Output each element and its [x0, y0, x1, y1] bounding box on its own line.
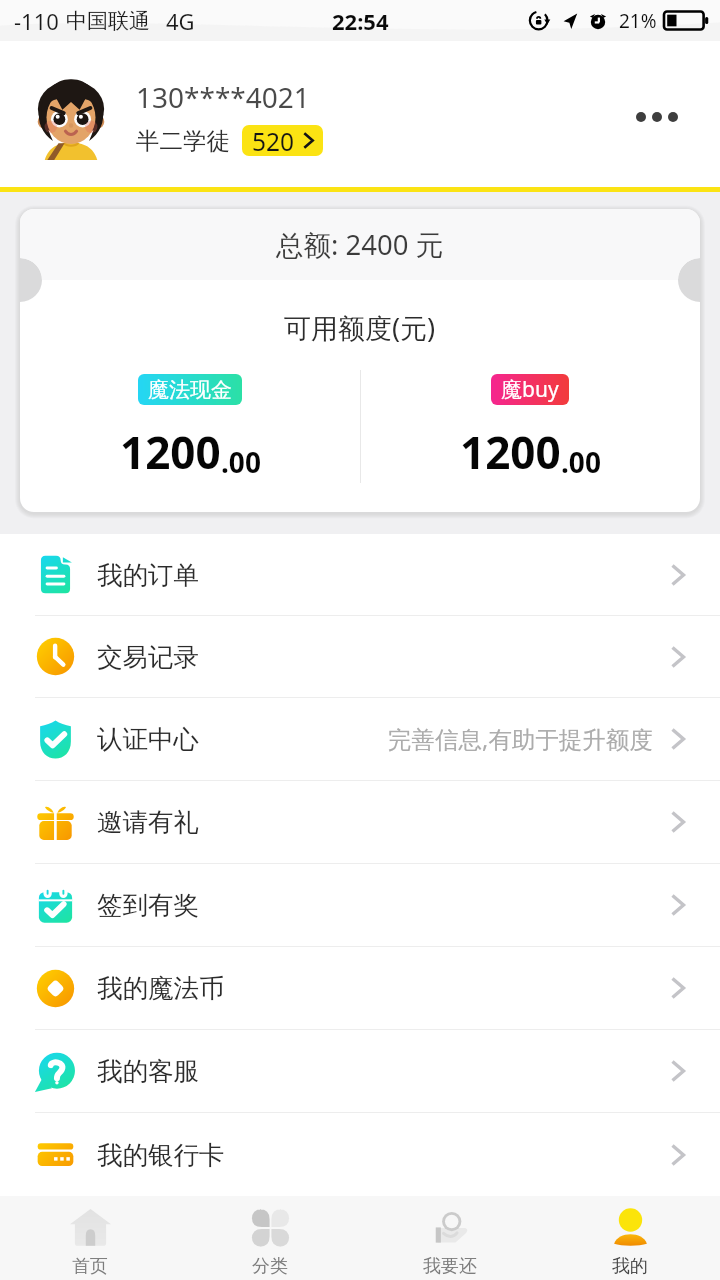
- staticText: 半二学徒: [136, 126, 230, 156]
- button[interactable]: More options: [626, 98, 688, 136]
- staticText: 1200: [120, 422, 221, 482]
- staticText: 我的订单: [97, 559, 199, 591]
- button[interactable]: 交易记录: [0, 616, 720, 698]
- staticText: -110: [14, 6, 59, 36]
- staticText: 21%: [619, 8, 657, 34]
- button[interactable]: 分类: [180, 1196, 360, 1280]
- button[interactable]: 邀请有礼: [0, 781, 720, 864]
- staticText: 我的客服: [97, 1055, 199, 1087]
- staticText: 交易记录: [97, 641, 199, 673]
- staticText: 520: [252, 125, 295, 156]
- staticText: 认证中心: [97, 723, 199, 755]
- staticText: 中国联通: [66, 8, 150, 34]
- button[interactable]: 我的: [540, 1196, 720, 1280]
- button[interactable]: 首页: [0, 1196, 180, 1280]
- staticText: 我的魔法币: [97, 972, 225, 1004]
- staticText: 魔buy: [501, 375, 559, 404]
- staticText: 签到有奖: [97, 889, 199, 921]
- staticText: 1200: [460, 422, 561, 482]
- staticText: 总额: 2400 元: [276, 226, 444, 264]
- button[interactable]: 我的客服: [0, 1030, 720, 1113]
- staticText: 魔法现金: [148, 377, 232, 403]
- staticText: 4G: [166, 6, 195, 36]
- button[interactable]: 我的魔法币: [0, 947, 720, 1030]
- button[interactable]: 认证中心: [0, 698, 720, 781]
- button[interactable]: 我的订单: [0, 534, 720, 616]
- button[interactable]: 我的银行卡: [0, 1113, 720, 1196]
- staticText: 22:54: [332, 6, 389, 36]
- button[interactable]: 魔buy: [360, 366, 700, 482]
- staticText: 我的银行卡: [97, 1139, 225, 1171]
- staticText: 我要还: [423, 1255, 477, 1278]
- staticText: .00: [561, 443, 601, 481]
- staticText: .00: [221, 443, 261, 481]
- staticText: 我的: [612, 1255, 648, 1278]
- button[interactable]: 签到有奖: [0, 864, 720, 947]
- staticText: 130****4021: [136, 78, 310, 116]
- staticText: 邀请有礼: [97, 806, 199, 838]
- staticText: 可用额度(元): [284, 309, 436, 346]
- button[interactable]: 魔法现金: [20, 366, 360, 482]
- button[interactable]: 我要还: [360, 1196, 540, 1280]
- staticText: 分类: [252, 1255, 288, 1278]
- staticText: 完善信息,有助于提升额度: [388, 723, 653, 755]
- button[interactable]: 520: [242, 125, 323, 156]
- staticText: 首页: [72, 1255, 108, 1278]
